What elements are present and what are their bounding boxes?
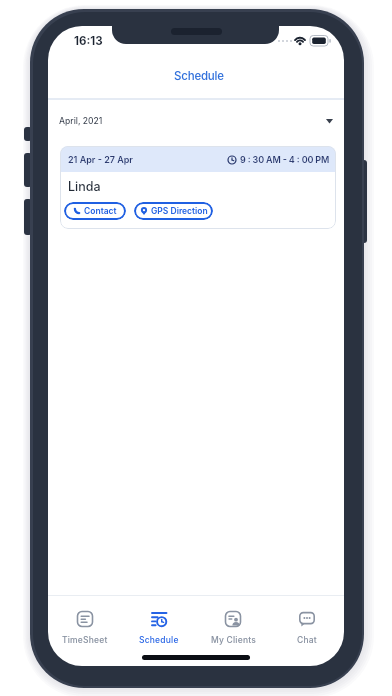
staticText: GPS Direction	[151, 206, 208, 216]
button[interactable]: Contact	[64, 202, 126, 220]
button[interactable]: TimeSheet	[48, 604, 122, 650]
staticText: TimeSheet	[62, 635, 108, 645]
button[interactable]: GPS Direction	[134, 202, 213, 220]
staticText: Contact	[84, 206, 117, 216]
button[interactable]: Schedule	[122, 604, 196, 650]
staticText: Schedule	[174, 69, 224, 83]
staticText: Schedule	[139, 635, 179, 645]
staticText: Chat	[297, 635, 317, 645]
staticText: 21 Apr - 27 Apr	[68, 154, 133, 165]
button[interactable]: April, 2021	[48, 106, 344, 136]
staticText: 16:13	[74, 34, 103, 48]
staticText: April, 2021	[59, 116, 103, 126]
staticText: My Clients	[211, 635, 256, 645]
button[interactable]: My Clients	[196, 604, 270, 650]
staticText: 9 : 30 AM - 4 : 00 PM	[240, 154, 330, 165]
button[interactable]: Chat	[270, 604, 344, 650]
staticText: Linda	[68, 179, 101, 194]
